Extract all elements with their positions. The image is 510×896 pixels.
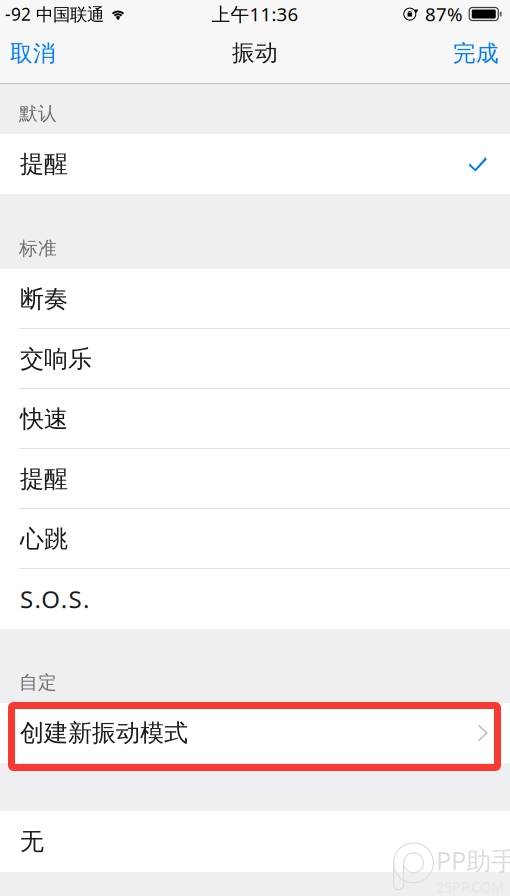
staticText: 断奏 <box>20 284 68 314</box>
button[interactable]: S.O.S. <box>0 569 510 629</box>
button[interactable]: 提醒 <box>0 449 510 509</box>
staticText: 提醒 <box>20 149 68 179</box>
button[interactable]: 完成 <box>439 28 510 84</box>
staticText: -92 中国联通 <box>5 2 104 25</box>
staticText: 快速 <box>20 404 68 434</box>
staticText: 自定 <box>19 671 57 694</box>
staticText: PP助手 <box>436 843 510 877</box>
staticText: 默认 <box>19 102 57 125</box>
staticText: 上午11:36 <box>211 2 298 26</box>
staticText: S.O.S. <box>20 583 89 615</box>
button[interactable]: 交响乐 <box>0 329 510 389</box>
staticText: 取消 <box>10 40 56 67</box>
button[interactable]: 提醒 <box>0 134 510 194</box>
staticText: 振动 <box>232 39 278 67</box>
button[interactable]: 无 <box>0 811 510 872</box>
staticText: 交响乐 <box>20 344 92 374</box>
button[interactable]: 快速 <box>0 389 510 449</box>
staticText: 创建新振动模式 <box>20 718 188 748</box>
staticText: 标准 <box>19 237 57 260</box>
button[interactable]: 心跳 <box>0 509 510 569</box>
staticText: 提醒 <box>20 464 68 494</box>
button[interactable]: 取消 <box>0 28 70 84</box>
button[interactable]: 断奏 <box>0 269 510 329</box>
staticText: 完成 <box>453 40 499 67</box>
staticText: 87% <box>425 2 463 26</box>
button[interactable]: 创建新振动模式 <box>0 703 510 763</box>
staticText: 心跳 <box>20 524 68 554</box>
staticText: 无 <box>20 827 44 856</box>
